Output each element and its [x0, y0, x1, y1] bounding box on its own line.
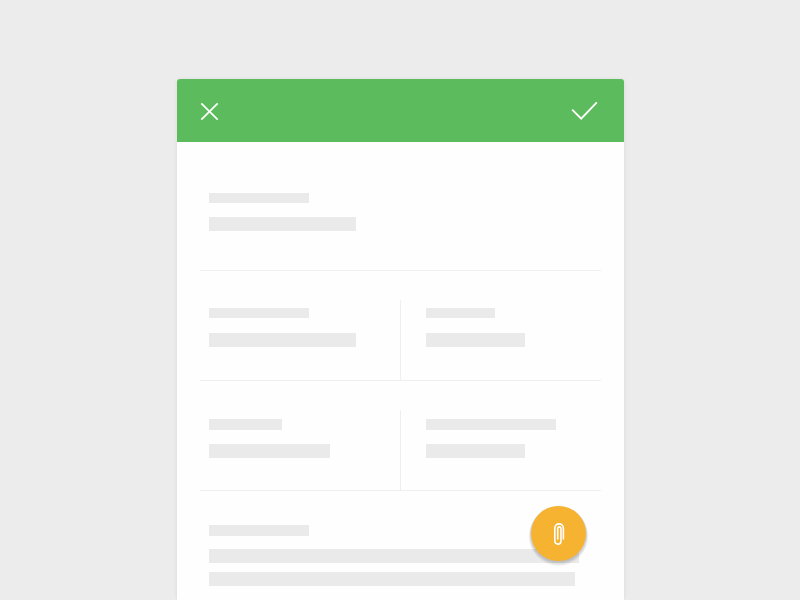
button[interactable] — [177, 142, 624, 270]
button[interactable] — [177, 490, 624, 600]
button[interactable]: Close — [193, 95, 226, 128]
button[interactable]: Attach file — [531, 506, 586, 561]
button[interactable]: Send — [564, 94, 597, 127]
button[interactable] — [177, 270, 624, 380]
button[interactable] — [177, 380, 624, 490]
